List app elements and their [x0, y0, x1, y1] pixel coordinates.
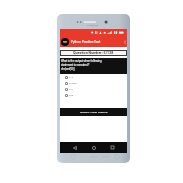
staticText: What is the output when following statem… [61, 59, 102, 70]
button[interactable]: More options [122, 36, 127, 47]
staticText: SUBMIT YOUR CHOICE [80, 111, 108, 114]
button[interactable]: Python Practice Test [60, 36, 127, 47]
staticText: b. Error [69, 82, 77, 85]
button[interactable]: Recent apps [108, 143, 117, 152]
button[interactable]: b. Error [60, 80, 127, 86]
staticText: a. A [69, 76, 74, 79]
staticText: Question Number: 5/128 [73, 51, 114, 55]
staticText: d. B [69, 94, 74, 97]
button[interactable]: SUBMIT YOUR CHOICE [60, 108, 127, 116]
button[interactable]: Home [89, 143, 98, 152]
button[interactable]: Back [70, 143, 79, 152]
staticText: c. n [69, 88, 73, 91]
staticText: Python Practice Test [71, 40, 101, 44]
button[interactable]: a. A [60, 74, 127, 80]
staticText: SAMSUNG [87, 24, 98, 26]
button[interactable]: d. B [60, 92, 127, 98]
button[interactable]: c. n [60, 86, 127, 92]
